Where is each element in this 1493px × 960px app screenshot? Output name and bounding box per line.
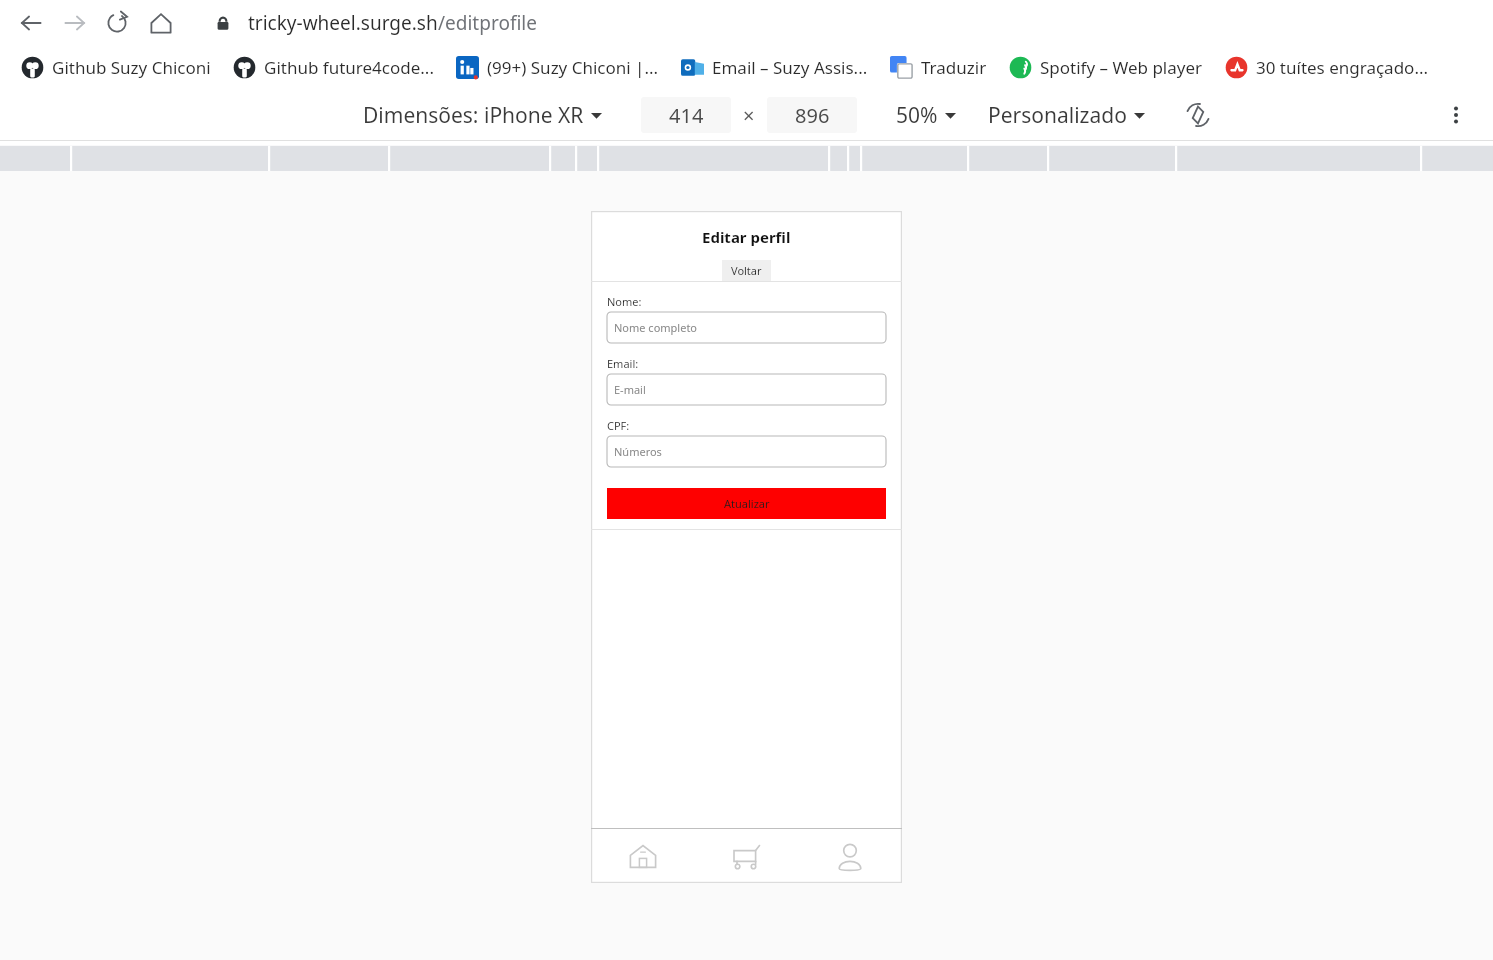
button[interactable]: Reload bbox=[102, 8, 132, 38]
button[interactable]: Github Suzy Chiconi bbox=[16, 53, 216, 82]
button[interactable]: Números bbox=[607, 436, 886, 467]
button[interactable]: Forward bbox=[60, 8, 90, 38]
button[interactable]: 414 bbox=[641, 97, 731, 133]
button[interactable]: 30 tuítes engraçado... bbox=[1220, 53, 1434, 82]
button[interactable]: Voltar bbox=[722, 260, 771, 281]
button[interactable]: Rotate bbox=[1182, 99, 1214, 131]
button[interactable]: E-mail bbox=[607, 374, 886, 405]
button[interactable]: 50% bbox=[893, 99, 959, 132]
staticText: Github Suzy Chiconi bbox=[52, 56, 211, 79]
staticText: /editprofile bbox=[438, 10, 537, 36]
button[interactable]: Atualizar bbox=[607, 488, 886, 519]
staticText: Editar perfil bbox=[702, 227, 791, 247]
staticText: Nome: bbox=[607, 294, 642, 309]
button[interactable]: Cart bbox=[694, 829, 798, 883]
button[interactable]: Nome completo bbox=[607, 312, 886, 343]
staticText: Spotify – Web player bbox=[1040, 56, 1203, 79]
button[interactable]: Github future4code... bbox=[228, 53, 439, 82]
button[interactable]: Dimensões: iPhone XR bbox=[360, 99, 605, 132]
staticText: 50% bbox=[896, 101, 938, 130]
button[interactable]: Email – Suzy Assis... bbox=[676, 53, 873, 82]
staticText: Atualizar bbox=[724, 496, 770, 511]
staticText: Voltar bbox=[731, 263, 762, 278]
staticText: CPF: bbox=[607, 418, 630, 433]
staticText: 30 tuítes engraçado... bbox=[1256, 56, 1429, 79]
button[interactable]: 896 bbox=[767, 97, 857, 133]
staticText: Email – Suzy Assis... bbox=[712, 56, 868, 79]
staticText: Email: bbox=[607, 356, 639, 371]
staticText: Nome completo bbox=[614, 320, 698, 335]
button[interactable]: Home bbox=[146, 8, 176, 38]
button[interactable]: Personalizado bbox=[985, 99, 1148, 132]
button[interactable]: Spotify – Web player bbox=[1004, 53, 1208, 82]
button[interactable]: Back bbox=[16, 8, 46, 38]
button[interactable]: tricky-wheel.surge.sh bbox=[198, 6, 1473, 40]
staticText: Números bbox=[614, 444, 662, 459]
staticText: Github future4code... bbox=[264, 56, 434, 79]
staticText: (99+) Suzy Chiconi |... bbox=[487, 56, 659, 79]
staticText: tricky-wheel.surge.sh bbox=[248, 10, 438, 36]
staticText: Traduzir bbox=[921, 56, 987, 79]
staticText: 896 bbox=[795, 102, 830, 129]
staticText: 414 bbox=[669, 102, 704, 129]
staticText: × bbox=[743, 102, 755, 129]
staticText: Personalizado bbox=[988, 101, 1127, 130]
button[interactable]: (99+) Suzy Chiconi |... bbox=[451, 53, 664, 82]
staticText: E-mail bbox=[614, 382, 646, 397]
staticText: Dimensões: iPhone XR bbox=[363, 101, 584, 130]
button[interactable]: Home bbox=[591, 829, 694, 883]
button[interactable]: Traduzir bbox=[885, 53, 992, 82]
button[interactable]: Profile bbox=[798, 829, 902, 883]
button[interactable]: More options bbox=[1439, 98, 1473, 132]
